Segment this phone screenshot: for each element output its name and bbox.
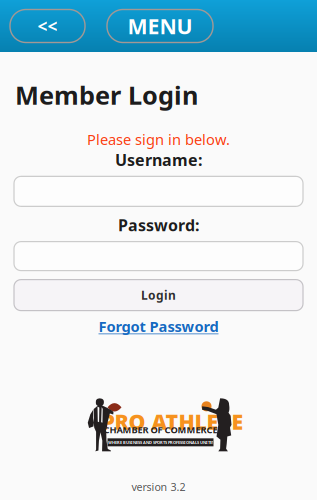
- staticText: Login: [141, 287, 176, 303]
- staticText: Please sign in below.: [87, 130, 230, 149]
- staticText: <<: [37, 14, 57, 37]
- staticText: PRO ATHLETE: [101, 407, 243, 436]
- button[interactable]: Login: [14, 280, 303, 311]
- button[interactable]: Menu: [107, 9, 213, 42]
- staticText: version 3.2: [131, 480, 185, 494]
- staticText: Member Login: [15, 78, 198, 112]
- button[interactable]: Forgot Password: [98, 317, 218, 336]
- staticText: Username:: [115, 149, 202, 170]
- staticText: CHAMBER OF COMMERCE: [103, 423, 217, 436]
- button[interactable]: Back: [10, 9, 85, 42]
- staticText: MENU: [127, 12, 192, 40]
- staticText: WHERE BUSINESS AND SPORTS PROFESSIONALS …: [108, 440, 213, 445]
- staticText: Password:: [118, 214, 199, 236]
- staticText: Forgot Password: [98, 317, 218, 336]
